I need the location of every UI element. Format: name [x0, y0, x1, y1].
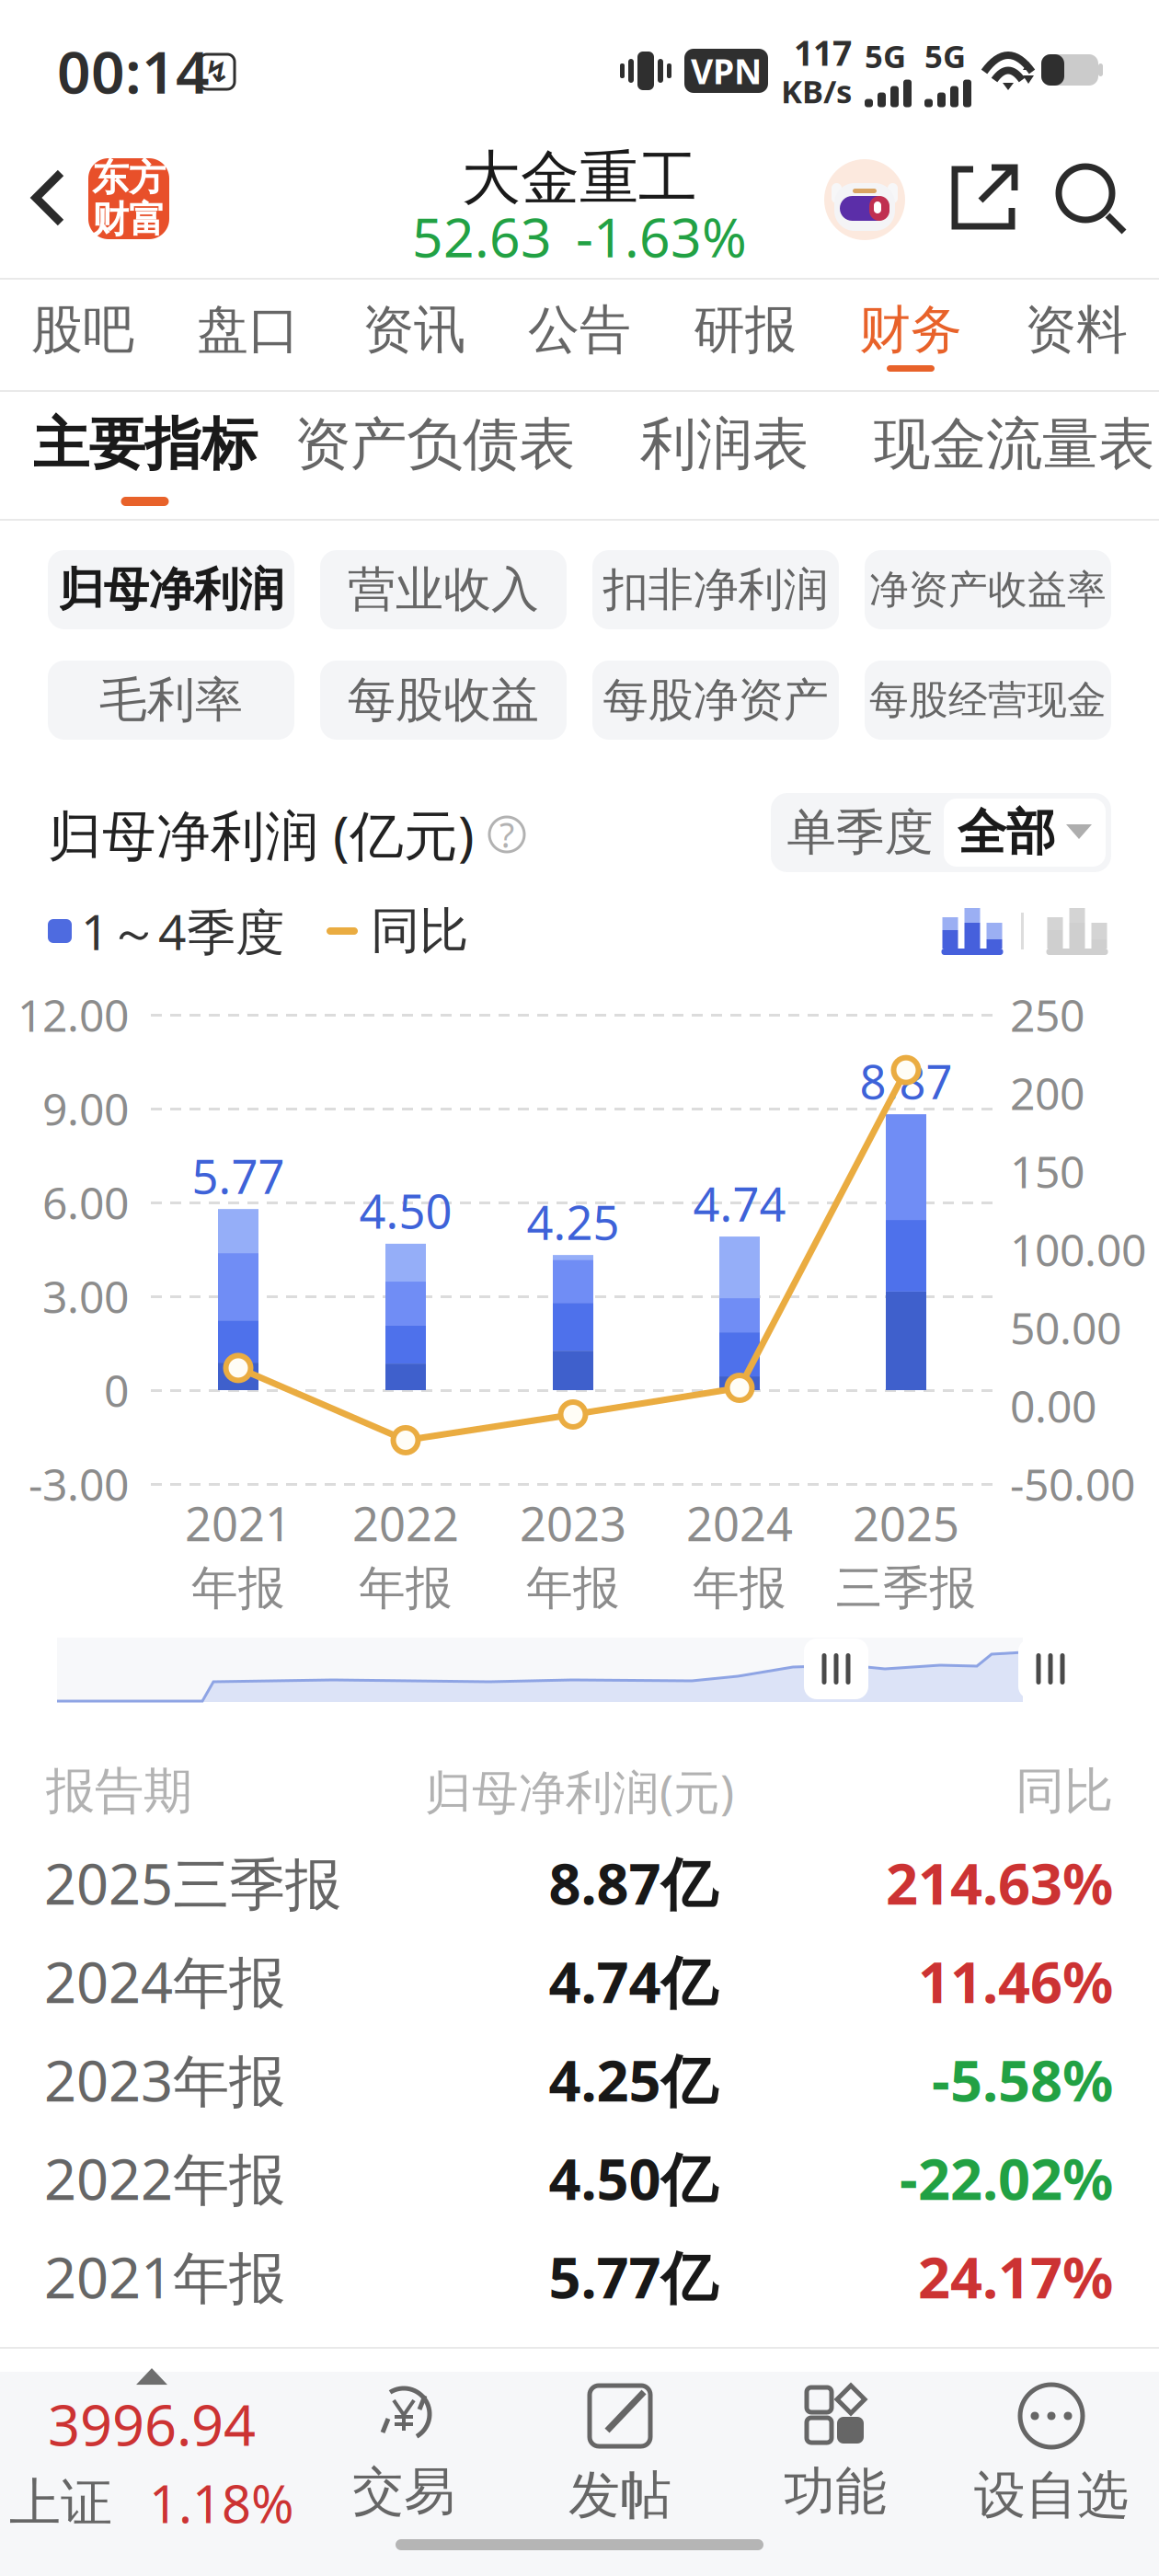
button[interactable]: 2023年报	[0, 2030, 1159, 2129]
staticText: 50.00	[1010, 1298, 1121, 1357]
staticText: 0.00	[1010, 1376, 1096, 1435]
button[interactable]: 2022年报	[0, 2129, 1159, 2227]
button[interactable]: 归母净利润	[48, 550, 294, 629]
button[interactable]: 2021年报	[0, 2227, 1159, 2326]
staticText: 4.74亿	[549, 1944, 717, 2019]
button[interactable]: 设自选	[959, 2383, 1143, 2521]
staticText: 2021年报	[44, 2239, 285, 2314]
button[interactable]: 利润表	[579, 392, 869, 519]
button[interactable]: 3996.94	[0, 2379, 304, 2526]
button[interactable]: Help	[489, 817, 524, 852]
button[interactable]: 扣非净利润	[592, 550, 839, 629]
staticText: 4.50亿	[549, 2141, 717, 2216]
staticText: 200	[1010, 1064, 1084, 1122]
staticText: 大金重工	[462, 142, 697, 215]
button[interactable]: Range end	[1018, 1639, 1083, 1699]
staticText: 4.50	[359, 1180, 452, 1242]
staticText: 研报	[694, 298, 797, 361]
staticText: 12.00	[17, 985, 129, 1044]
button[interactable]: 主要指标	[0, 392, 290, 519]
staticText: 全部	[958, 802, 1055, 863]
staticText: 5.77亿	[549, 2239, 717, 2314]
button[interactable]: 公告	[497, 281, 662, 390]
staticText: -5.58%	[932, 2042, 1113, 2117]
button[interactable]: 每股经营现金	[865, 661, 1111, 740]
button[interactable]: 每股净资产	[592, 661, 839, 740]
button[interactable]: Share	[947, 162, 1021, 236]
staticText: 52.63	[412, 201, 552, 272]
staticText: 2024	[686, 1492, 793, 1554]
button[interactable]: 2025三季报	[0, 1834, 1159, 1932]
button[interactable]: Range start	[804, 1639, 868, 1699]
staticText: 2023	[520, 1492, 626, 1554]
button[interactable]: 2024年报	[0, 1932, 1159, 2030]
staticText: 年报	[359, 1560, 453, 1617]
button[interactable]: Stacked bar chart	[940, 907, 1004, 955]
button[interactable]: East Money	[88, 158, 169, 239]
staticText: 财富	[92, 197, 166, 242]
staticText: 年报	[693, 1560, 786, 1617]
staticText: 0	[104, 1361, 129, 1419]
staticText: 3.00	[42, 1267, 129, 1326]
button[interactable]: 每股收益	[320, 661, 567, 740]
button[interactable]: 功能	[743, 2383, 927, 2521]
staticText: 2022年报	[44, 2141, 285, 2216]
staticText: ↯	[205, 55, 230, 88]
button[interactable]: 研报	[662, 281, 828, 390]
staticText: 1～4季度	[81, 898, 284, 964]
staticText: 营业收入	[348, 560, 539, 619]
button[interactable]: Search	[1056, 162, 1130, 236]
staticText: 150	[1010, 1142, 1084, 1200]
staticText: 11.46%	[918, 1944, 1113, 2019]
button[interactable]: 单季度	[776, 799, 944, 867]
staticText: 5G	[865, 34, 906, 77]
button[interactable]: 资料	[993, 281, 1159, 390]
button[interactable]: 净资产收益率	[865, 550, 1111, 629]
staticText: 净资产收益率	[869, 566, 1107, 614]
staticText: 5.77	[192, 1145, 285, 1207]
staticText: 2022	[352, 1492, 459, 1554]
staticText: 3996.94	[48, 2387, 256, 2461]
staticText: -22.02%	[900, 2141, 1113, 2216]
button[interactable]: Grouped bar chart	[1045, 907, 1109, 955]
button[interactable]: AI assistant	[823, 158, 906, 241]
staticText: 每股收益	[348, 671, 539, 730]
staticText: 三季报	[836, 1560, 976, 1617]
button[interactable]: 交易	[312, 2383, 496, 2521]
staticText: 2021	[185, 1492, 292, 1554]
staticText: 24.17%	[918, 2239, 1113, 2314]
staticText: -50.00	[1010, 1455, 1135, 1513]
button[interactable]: 盘口	[166, 281, 331, 390]
staticText: 117	[794, 30, 852, 75]
button[interactable]: 股吧	[0, 281, 166, 390]
button[interactable]: 现金流量表	[869, 392, 1159, 519]
staticText: 4.25	[527, 1191, 620, 1253]
staticText: 4.74	[693, 1172, 786, 1234]
button[interactable]: 毛利率	[48, 661, 294, 740]
staticText: 2023年报	[44, 2042, 285, 2117]
staticText: 交易	[352, 2460, 455, 2523]
staticText: 主要指标	[33, 410, 257, 479]
button[interactable]: 营业收入	[320, 550, 567, 629]
staticText: ?	[499, 812, 514, 857]
button[interactable]: 发帖	[528, 2383, 712, 2521]
staticText: 资料	[1025, 298, 1128, 361]
staticText: 8.87亿	[549, 1845, 717, 1920]
staticText: 100.00	[1010, 1220, 1146, 1279]
button[interactable]: 财务	[828, 281, 993, 390]
staticText: 1.18%	[149, 2469, 294, 2537]
button[interactable]: 资讯	[331, 281, 497, 390]
staticText: 报告期	[46, 1761, 192, 1821]
staticText: 股吧	[31, 298, 134, 361]
staticText: 发帖	[568, 2464, 671, 2527]
staticText: 功能	[784, 2460, 887, 2523]
button[interactable]: 全部	[944, 799, 1106, 867]
button[interactable]: Back	[17, 155, 94, 241]
staticText: 00:14	[57, 32, 210, 110]
staticText: 东方	[92, 155, 166, 201]
button[interactable]: 资产负债表	[290, 392, 579, 519]
staticText: 同比	[1016, 1761, 1113, 1821]
staticText: 资产负债表	[294, 410, 575, 479]
staticText: 2025	[853, 1492, 959, 1554]
staticText: -3.00	[29, 1455, 129, 1513]
